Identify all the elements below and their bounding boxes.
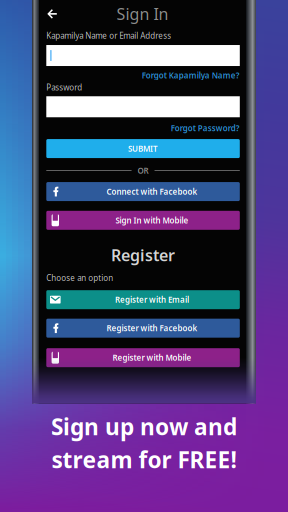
button[interactable]: Forgot Password? — [171, 123, 240, 133]
staticText: Register — [111, 244, 175, 265]
button[interactable]: SUBMIT — [46, 139, 240, 158]
staticText: Password — [46, 82, 82, 93]
button[interactable]: Sign In with Mobile — [46, 211, 240, 230]
staticText: Kapamilya Name or Email Address — [46, 30, 171, 41]
staticText: Register with Facebook — [106, 323, 197, 333]
button[interactable]: Back — [44, 5, 60, 22]
staticText: OR — [138, 165, 149, 176]
staticText: Register with Email — [115, 294, 189, 305]
staticText: Forgot Password? — [171, 123, 240, 133]
staticText: Connect with Facebook — [106, 186, 197, 197]
button[interactable]: Forgot Kapamilya Name? — [142, 70, 240, 81]
staticText: Sign up now and — [51, 411, 237, 441]
button[interactable]: Register with Mobile — [46, 348, 240, 367]
staticText: Choose an option — [46, 272, 113, 283]
staticText: SUBMIT — [128, 143, 158, 154]
button[interactable]: Register with Facebook — [46, 319, 240, 338]
button[interactable]: Connect with Facebook — [46, 182, 240, 201]
staticText: Sign In with Mobile — [115, 215, 188, 226]
button[interactable]: Register with Email — [46, 290, 240, 309]
staticText: stream for FREE! — [51, 444, 236, 475]
staticText: Register with Mobile — [112, 352, 191, 363]
staticText: Forgot Kapamilya Name? — [142, 70, 240, 81]
staticText: Sign In — [116, 3, 168, 24]
